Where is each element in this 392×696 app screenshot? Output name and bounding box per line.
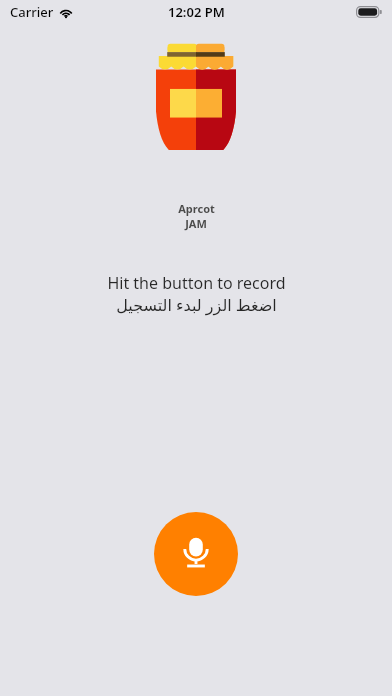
staticText: Carrier xyxy=(10,3,54,21)
staticText: اضغط الزر لبدء التسجيل xyxy=(116,294,277,316)
staticText: JAM xyxy=(185,216,207,231)
staticText: 12:02 PM xyxy=(168,3,225,21)
staticText: Hit the button to record xyxy=(107,272,286,294)
staticText: Aprcot xyxy=(178,201,215,216)
button[interactable]: Record xyxy=(154,512,238,596)
